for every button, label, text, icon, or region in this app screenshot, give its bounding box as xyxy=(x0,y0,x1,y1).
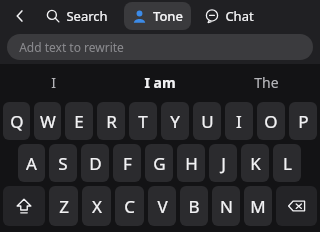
button[interactable]: Z xyxy=(49,186,78,226)
button[interactable]: G xyxy=(145,144,173,182)
button[interactable]: O xyxy=(257,102,285,140)
staticText: X xyxy=(92,195,102,218)
staticText: I xyxy=(236,110,242,133)
staticText: V xyxy=(157,195,168,218)
button[interactable]: Back xyxy=(0,0,40,32)
staticText: Tone xyxy=(153,7,183,25)
button[interactable]: M xyxy=(244,186,272,226)
staticText: K xyxy=(250,152,261,175)
button[interactable]: I am xyxy=(106,64,213,100)
button[interactable]: E xyxy=(65,102,93,140)
staticText: D xyxy=(89,152,102,175)
button[interactable]: I xyxy=(225,102,253,140)
staticText: Z xyxy=(59,195,69,218)
button[interactable]: C xyxy=(115,186,144,226)
staticText: W xyxy=(40,110,56,133)
button[interactable]: L xyxy=(273,144,301,182)
button[interactable]: B xyxy=(180,186,208,226)
staticText: R xyxy=(106,110,117,133)
staticText: S xyxy=(58,152,68,175)
button[interactable]: U xyxy=(193,102,221,140)
button[interactable]: V xyxy=(148,186,176,226)
button[interactable]: Chat xyxy=(199,2,260,30)
button[interactable]: W xyxy=(34,102,61,140)
staticText: C xyxy=(124,195,135,218)
staticText: B xyxy=(188,195,200,218)
button[interactable]: S xyxy=(49,144,77,182)
button[interactable]: I xyxy=(0,64,106,100)
staticText: M xyxy=(250,195,266,218)
button[interactable]: F xyxy=(113,144,141,182)
button[interactable]: Q xyxy=(3,102,30,140)
staticText: Search xyxy=(66,7,108,25)
staticText: E xyxy=(74,110,84,133)
button[interactable]: Tone xyxy=(124,2,191,30)
button[interactable]: J xyxy=(209,144,237,182)
button[interactable]: Add text to rewrite xyxy=(7,34,313,60)
staticText: H xyxy=(185,152,198,175)
staticText: Add text to rewrite xyxy=(19,39,124,55)
staticText: L xyxy=(283,152,292,175)
staticText: O xyxy=(264,110,278,133)
staticText: J xyxy=(221,152,226,175)
staticText: T xyxy=(138,110,148,133)
button[interactable]: R xyxy=(97,102,125,140)
button[interactable]: Y xyxy=(161,102,189,140)
button[interactable]: X xyxy=(82,186,111,226)
button[interactable]: A xyxy=(18,144,45,182)
staticText: A xyxy=(26,152,37,175)
staticText: The xyxy=(254,73,279,92)
staticText: Chat xyxy=(225,7,254,25)
button[interactable]: P xyxy=(289,102,317,140)
staticText: N xyxy=(220,195,233,218)
button[interactable]: H xyxy=(177,144,205,182)
button[interactable]: K xyxy=(241,144,269,182)
button[interactable]: The xyxy=(213,64,320,100)
button[interactable]: Search xyxy=(40,2,114,30)
staticText: G xyxy=(153,152,166,175)
staticText: F xyxy=(123,152,132,175)
staticText: I am xyxy=(144,73,176,92)
button[interactable]: Shift xyxy=(3,186,45,226)
button[interactable]: D xyxy=(81,144,109,182)
staticText: I xyxy=(51,73,56,92)
staticText: U xyxy=(201,110,214,133)
staticText: Y xyxy=(170,110,180,133)
button[interactable]: T xyxy=(129,102,157,140)
staticText: Q xyxy=(10,110,24,133)
button[interactable]: Backspace xyxy=(276,186,317,226)
button[interactable]: N xyxy=(212,186,240,226)
staticText: P xyxy=(298,110,309,133)
